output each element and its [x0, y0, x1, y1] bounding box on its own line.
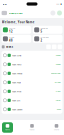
staticText: Task Seven	[12, 108, 22, 111]
button[interactable]: Sort	[52, 44, 56, 49]
staticText: 5	[40, 30, 42, 33]
staticText: Task Two	[12, 63, 21, 66]
staticText: 9:41	[2, 2, 6, 6]
staticText: Friday	[55, 81, 61, 84]
staticText: Overdue	[40, 35, 48, 39]
staticText: Tasks	[6, 45, 13, 49]
button[interactable]: Overdue	[33, 35, 62, 43]
button[interactable]: More	[51, 122, 62, 133]
staticText: Task Six	[12, 99, 20, 102]
button[interactable]: Active	[1, 26, 31, 34]
staticText: Soon	[57, 108, 61, 111]
staticText: Tasks	[29, 128, 34, 131]
staticText: Active	[9, 26, 15, 30]
button[interactable]: Task One	[1, 51, 62, 60]
staticText: Today	[56, 54, 61, 57]
button[interactable]: Home	[2, 122, 13, 133]
button[interactable]: Add	[58, 44, 62, 49]
button[interactable]: Filter	[46, 44, 51, 49]
staticText: Task Three	[12, 72, 22, 75]
staticText: 2	[40, 39, 42, 42]
button[interactable]: Pending	[33, 26, 62, 34]
button[interactable]: Menu	[2, 11, 7, 15]
button[interactable]: Tasks	[26, 122, 37, 133]
button[interactable]: Task Six	[1, 96, 62, 105]
button[interactable]: Task Four	[1, 78, 62, 87]
staticText: Tomorrow	[51, 72, 61, 75]
staticText: Task One	[12, 54, 21, 57]
button[interactable]: Task Two	[1, 60, 62, 69]
staticText: Home	[5, 128, 10, 131]
staticText: Task Four	[12, 81, 21, 84]
staticText: Today	[56, 63, 61, 66]
button[interactable]: Search	[50, 10, 55, 15]
staticText: Later	[56, 99, 61, 102]
staticText: Next	[56, 90, 61, 93]
staticText: Pending	[40, 26, 47, 30]
staticText: ıll ▮	[56, 3, 61, 5]
button[interactable]: Task Five	[1, 87, 62, 96]
button[interactable]: Profile	[57, 10, 62, 15]
staticText: Task Five	[12, 90, 21, 93]
staticText: Welcome, Your Name	[2, 20, 35, 24]
staticText: 12	[9, 30, 13, 33]
button[interactable]: Task Seven	[1, 105, 62, 114]
staticText: Dashboard	[9, 11, 23, 15]
button[interactable]: Done	[1, 35, 31, 43]
button[interactable]: Task Three	[1, 69, 62, 78]
staticText: More	[54, 128, 59, 131]
staticText: 48	[9, 39, 13, 42]
staticText: Done	[9, 35, 14, 39]
